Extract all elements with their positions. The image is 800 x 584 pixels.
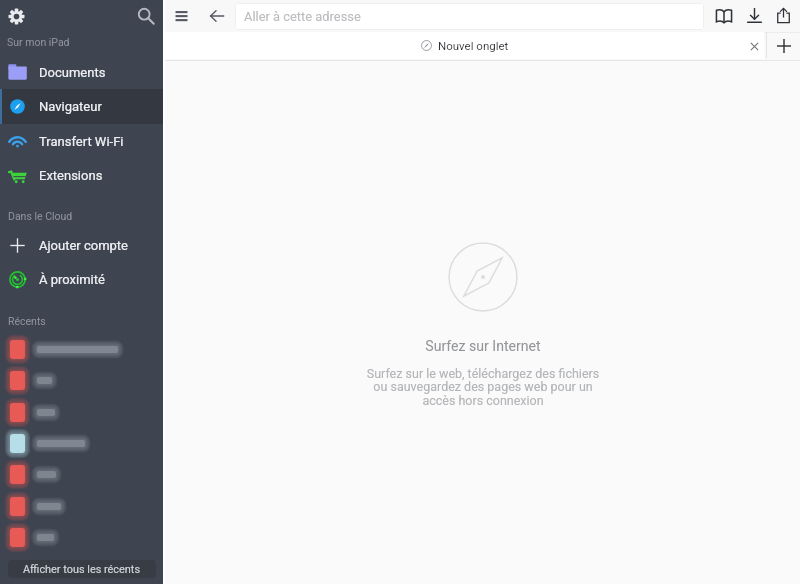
button[interactable]: Aller à cette adresse [235, 3, 704, 30]
button[interactable] [0, 334, 163, 365]
staticText: Documents [39, 65, 106, 80]
button[interactable]: Extensions [0, 158, 163, 193]
button[interactable]: Menu [169, 4, 193, 28]
button[interactable] [0, 397, 163, 428]
staticText: Récents [8, 315, 46, 327]
button[interactable]: Download [743, 4, 766, 27]
staticText: Sur mon iPad [7, 36, 70, 48]
button[interactable]: Transfert Wi-Fi [0, 124, 163, 159]
button[interactable] [0, 459, 163, 490]
staticText: Ajouter compte [39, 238, 129, 253]
button[interactable] [0, 365, 163, 396]
button[interactable] [0, 428, 163, 459]
staticText: Extensions [39, 168, 103, 183]
button[interactable]: Share [772, 4, 795, 27]
staticText: Nouvel onglet [438, 39, 509, 52]
button[interactable]: Search [137, 7, 155, 25]
button[interactable]: Navigateur [0, 89, 163, 124]
button[interactable]: Documents [0, 55, 163, 90]
button[interactable]: Bookmarks [712, 4, 735, 27]
button[interactable]: Afficher tous les récents [8, 560, 156, 578]
staticText: Surfez sur Internet [425, 338, 541, 355]
staticText: Aller à cette adresse [244, 9, 361, 24]
button[interactable]: Close tab [743, 35, 766, 58]
button[interactable] [0, 491, 163, 522]
staticText: Afficher tous les récents [23, 563, 141, 576]
staticText: Dans le Cloud [8, 210, 73, 222]
staticText: À proximité [39, 272, 105, 287]
button[interactable]: À proximité [0, 262, 163, 297]
button[interactable]: Back [205, 4, 228, 27]
button[interactable]: New tab [771, 33, 796, 58]
button[interactable] [0, 522, 163, 553]
staticText: Surfez sur le web, téléchargez des fichi… [333, 366, 633, 408]
button[interactable]: Ajouter compte [0, 228, 163, 263]
staticText: Navigateur [39, 99, 102, 114]
staticText: Transfert Wi-Fi [39, 134, 124, 149]
button[interactable]: Settings [8, 8, 25, 25]
button[interactable]: Nouvel onglet [165, 32, 764, 59]
